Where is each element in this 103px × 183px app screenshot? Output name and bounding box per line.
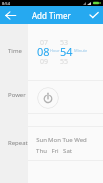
staticText: Hour bbox=[50, 48, 60, 53]
button[interactable]: Mon bbox=[48, 136, 61, 144]
staticText: Minute bbox=[74, 48, 88, 53]
staticText: Tue bbox=[62, 136, 73, 144]
button[interactable]: Fri bbox=[48, 147, 61, 155]
staticText: Power bbox=[8, 91, 26, 99]
staticText: 54 bbox=[60, 44, 73, 59]
button[interactable]: Sat bbox=[61, 147, 74, 155]
staticText: Mon bbox=[48, 136, 61, 144]
button[interactable]: Confirm bbox=[85, 6, 103, 24]
staticText: Add Timer bbox=[32, 10, 71, 21]
staticText: 08 bbox=[37, 44, 50, 59]
button[interactable]: Thu bbox=[35, 147, 48, 155]
staticText: 55 bbox=[60, 57, 69, 67]
button[interactable]: Back bbox=[0, 6, 20, 24]
staticText: Thu bbox=[36, 147, 47, 155]
button[interactable]: Power bbox=[37, 87, 59, 109]
staticText: Sat bbox=[63, 147, 72, 155]
staticText: Sun bbox=[36, 136, 47, 144]
staticText: 09 bbox=[40, 57, 49, 67]
button[interactable]: Tue bbox=[61, 136, 74, 144]
staticText: 53 bbox=[60, 38, 69, 48]
button[interactable]: Wed bbox=[74, 136, 87, 144]
staticText: Wed bbox=[74, 136, 87, 144]
staticText: Repeat bbox=[8, 139, 28, 147]
staticText: Time bbox=[8, 47, 22, 55]
button[interactable]: Sun bbox=[35, 136, 48, 144]
staticText: 07 bbox=[40, 38, 49, 48]
staticText: Fri bbox=[51, 147, 59, 155]
staticText: 8:54 bbox=[2, 1, 10, 6]
